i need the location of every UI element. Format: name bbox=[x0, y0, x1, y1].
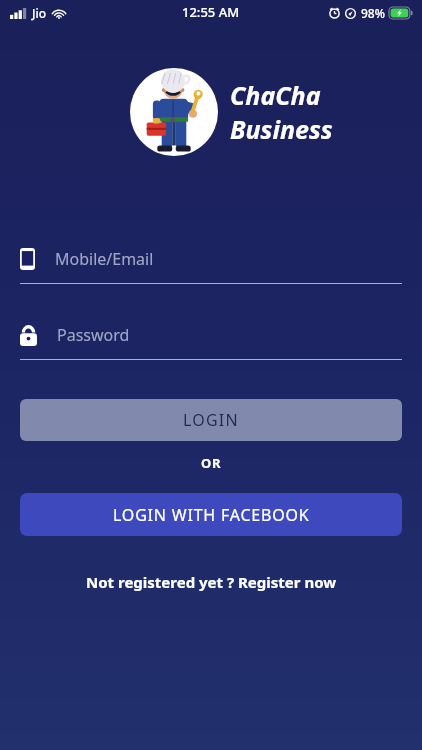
staticText: Jio bbox=[32, 5, 47, 21]
staticText: 98% bbox=[361, 5, 385, 21]
staticText: 12:55 AM bbox=[182, 3, 240, 21]
staticText: Not registered yet ? Register now bbox=[86, 572, 337, 592]
button[interactable]: Not registered yet ? Register now bbox=[0, 562, 422, 602]
button[interactable]: LOGIN bbox=[20, 399, 402, 441]
staticText: ChaCha bbox=[230, 78, 321, 112]
staticText: OR bbox=[201, 454, 222, 472]
staticText: LOGIN WITH FACEBOOK bbox=[113, 504, 310, 526]
staticText: Password bbox=[57, 324, 130, 346]
button[interactable]: Password bbox=[20, 324, 402, 360]
button[interactable]: Mobile/Email bbox=[20, 248, 402, 284]
staticText: LOGIN bbox=[183, 409, 239, 431]
staticText: Mobile/Email bbox=[55, 248, 154, 270]
button[interactable]: LOGIN WITH FACEBOOK bbox=[20, 493, 402, 536]
staticText: Business bbox=[230, 112, 333, 146]
